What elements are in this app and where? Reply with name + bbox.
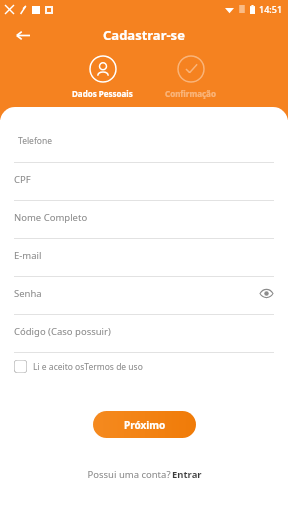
button[interactable]: Dados Pessoais xyxy=(68,52,137,99)
staticText: Senha xyxy=(14,287,42,300)
button[interactable]: Código (Caso possuir) xyxy=(0,315,288,353)
staticText: Dados Pessoais xyxy=(72,88,133,99)
button[interactable]: Mostrar senha xyxy=(258,285,274,301)
staticText: Li e aceito osTermos de uso xyxy=(33,361,143,373)
staticText: Nome Completo xyxy=(14,211,88,224)
staticText: Código (Caso possuir) xyxy=(14,325,111,338)
button[interactable]: E-mail xyxy=(0,239,288,277)
button[interactable]: Confirmação xyxy=(161,52,220,99)
staticText: Possui uma conta? xyxy=(86,468,172,481)
staticText: CPF xyxy=(14,173,31,186)
staticText: E-mail xyxy=(14,249,42,262)
staticText: Próximo xyxy=(124,418,166,432)
button[interactable]: Possui uma conta? xyxy=(0,468,288,481)
staticText: Confirmação xyxy=(165,88,216,99)
staticText: Entrar xyxy=(172,468,202,481)
button[interactable]: Telefone xyxy=(0,125,288,163)
button[interactable]: Li e aceito osTermos de uso xyxy=(14,360,143,373)
button[interactable]: Senha xyxy=(0,277,288,315)
button[interactable]: Próximo xyxy=(93,411,196,438)
staticText: Cadastrar-se xyxy=(103,26,185,44)
button[interactable]: Nome Completo xyxy=(0,201,288,239)
staticText: Telefone xyxy=(18,135,53,147)
button[interactable]: Voltar xyxy=(8,21,36,49)
staticText: 14:51 xyxy=(259,3,283,15)
button[interactable]: CPF xyxy=(0,163,288,201)
